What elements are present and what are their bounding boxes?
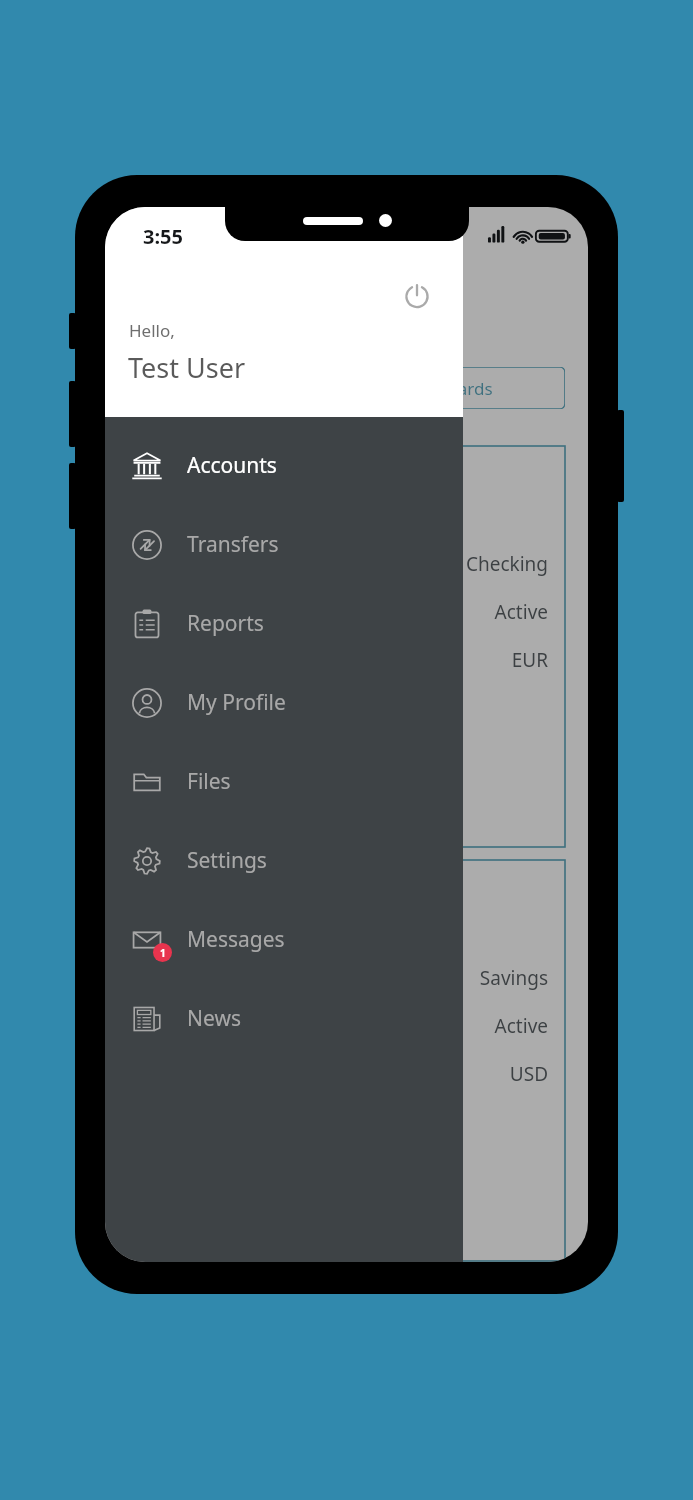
staticText: Checking [465,551,548,577]
staticText: 3:55 [143,223,183,250]
staticText: My Profile [187,688,286,717]
staticText: EUR [511,647,548,673]
staticText: USD [509,1061,548,1087]
button[interactable]: Log out [393,271,441,319]
staticText: Accounts [187,451,277,480]
staticText: Settings [187,846,267,875]
staticText: Active [494,599,548,625]
button[interactable]: Savings [395,860,565,1261]
staticText: Messages [187,925,285,954]
staticText: News [187,1004,241,1033]
button[interactable]: Files [105,742,463,821]
button[interactable]: Settings [105,821,463,900]
button[interactable]: My Profile [105,663,463,742]
button[interactable]: Accounts [105,426,463,505]
staticText: Reports [187,609,264,638]
button[interactable]: 1 [105,900,463,979]
staticText: 1 [160,946,166,960]
button[interactable]: Reports [105,584,463,663]
staticText: Active [494,1013,548,1039]
staticText: Savings [479,965,548,991]
button[interactable]: Transfers [105,505,463,584]
staticText: Files [187,767,231,796]
staticText: Cards [447,377,493,400]
staticText: Test User [128,349,246,386]
staticText: Hello, [129,319,175,342]
button[interactable]: News [105,979,463,1058]
button[interactable]: Checking [395,446,565,847]
button[interactable]: Cards [395,367,565,409]
staticText: Transfers [187,530,279,559]
